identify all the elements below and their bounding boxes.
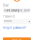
staticText: ••••••••	[4, 20, 12, 23]
staticText: name@example.com	[4, 9, 29, 12]
staticText: Password	[3, 15, 15, 18]
staticText: Email	[3, 4, 9, 7]
button[interactable]: Forgot password?	[3, 26, 26, 29]
button[interactable]: Sign In	[3, 37, 31, 40]
staticText: Sign In	[12, 38, 22, 40]
staticText: Forgot password?	[3, 26, 26, 29]
